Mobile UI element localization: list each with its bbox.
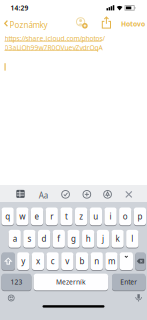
staticText: j	[102, 233, 104, 244]
button[interactable]: l	[126, 229, 138, 248]
button[interactable]: Attach	[83, 190, 91, 199]
staticText: x	[36, 256, 40, 266]
staticText: q	[5, 211, 10, 222]
button[interactable]: d	[38, 229, 50, 248]
button[interactable]: e	[31, 207, 43, 226]
staticText: g	[71, 233, 76, 244]
button[interactable]: Share	[102, 16, 111, 29]
button[interactable]: https://share.icloud.com/photos/	[4, 34, 102, 51]
staticText: d	[42, 233, 47, 244]
staticText: p	[137, 211, 142, 222]
button[interactable]: Emoji	[8, 295, 15, 301]
button[interactable]: h	[82, 229, 94, 248]
staticText: v	[65, 256, 69, 266]
button[interactable]: o	[119, 207, 131, 226]
staticText: t	[65, 211, 68, 222]
staticText: e	[34, 211, 39, 222]
staticText: 14:29	[10, 4, 28, 12]
button[interactable]: w	[16, 207, 28, 226]
staticText: s	[27, 233, 31, 244]
staticText: Mezerník	[56, 278, 86, 286]
staticText: a	[13, 233, 17, 244]
staticText: w	[19, 211, 25, 222]
button[interactable]: Insert Table	[16, 190, 25, 198]
button[interactable]: Dismiss Keyboard	[125, 191, 132, 198]
button[interactable]: f	[53, 229, 65, 248]
button[interactable]: k	[111, 229, 124, 248]
button[interactable]: g	[67, 229, 80, 248]
button[interactable]: b	[76, 252, 88, 270]
button[interactable]: t	[60, 207, 73, 226]
button[interactable]: r	[46, 207, 58, 226]
staticText: m	[108, 256, 115, 266]
button[interactable]: Dictation	[135, 294, 142, 302]
button[interactable]: m	[105, 252, 118, 270]
staticText: r	[50, 211, 53, 222]
button[interactable]: a	[9, 229, 21, 248]
staticText: y	[21, 256, 25, 266]
button[interactable]: Shift	[1, 252, 15, 270]
staticText: https://share.icloud.com/photos/	[4, 34, 104, 43]
button[interactable]: 123	[1, 273, 31, 291]
staticText: l	[131, 233, 133, 244]
button[interactable]: Hotovo	[121, 20, 145, 28]
staticText: Aa	[39, 190, 48, 201]
staticText: u	[93, 211, 98, 222]
staticText: o	[123, 211, 128, 222]
staticText: Hotovo	[121, 20, 145, 28]
staticText: z	[79, 211, 83, 222]
button[interactable]: Caron	[120, 252, 133, 270]
button[interactable]: c	[46, 252, 59, 270]
staticText: c	[51, 256, 55, 266]
staticText: k	[116, 233, 120, 244]
button[interactable]: i	[104, 207, 117, 226]
staticText: 03aLiOh99w7R0OVuevZvdrOqA	[4, 43, 102, 52]
staticText: n	[94, 256, 99, 266]
button[interactable]: Add People	[76, 17, 88, 29]
button[interactable]: s	[23, 229, 35, 248]
button[interactable]: q	[1, 207, 14, 226]
staticText: b	[80, 256, 85, 266]
button[interactable]: Checklist	[61, 190, 70, 199]
button[interactable]: n	[91, 252, 103, 270]
button[interactable]: j	[97, 229, 109, 248]
staticText: Enter	[120, 278, 137, 286]
staticText: h	[86, 233, 91, 244]
button[interactable]: v	[61, 252, 73, 270]
staticText: Poznámky	[10, 20, 48, 30]
button[interactable]: Mezerník	[34, 273, 108, 291]
button[interactable]: u	[90, 207, 102, 226]
staticText: f	[57, 233, 60, 244]
button[interactable]: Format	[39, 190, 48, 201]
button[interactable]: Markup	[103, 190, 112, 199]
button[interactable]: Delete	[135, 252, 146, 270]
button[interactable]: z	[75, 207, 87, 226]
button[interactable]: p	[134, 207, 146, 226]
button[interactable]: Enter	[112, 273, 145, 291]
staticText: i	[109, 211, 111, 222]
button[interactable]: x	[32, 252, 44, 270]
button[interactable]: y	[17, 252, 29, 270]
staticText: 123	[10, 278, 22, 286]
button[interactable]: Poznámky	[4, 18, 44, 28]
